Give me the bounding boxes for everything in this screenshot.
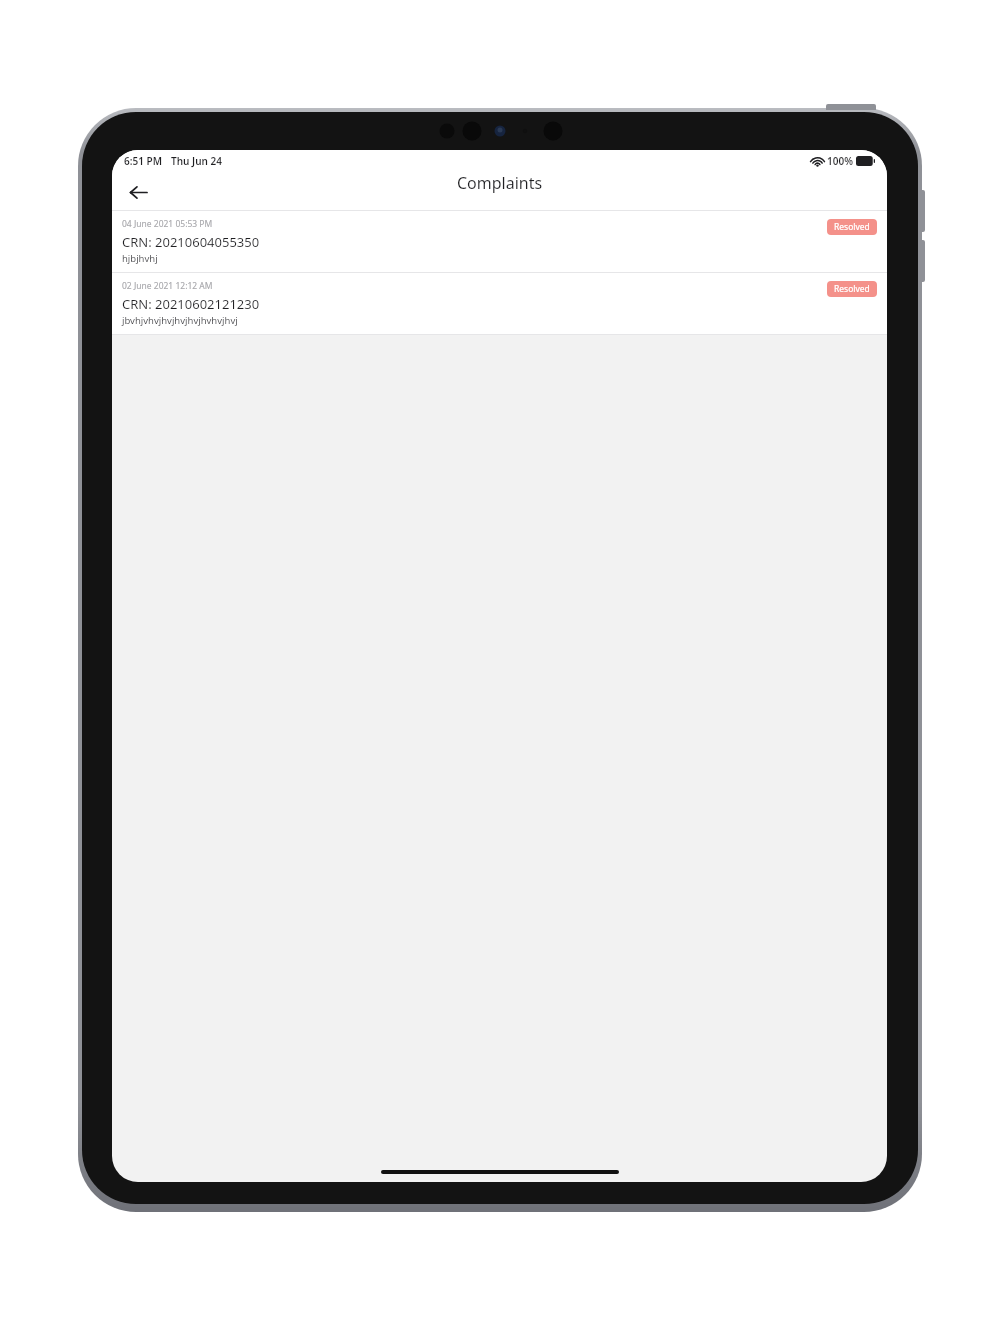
button[interactable]: Resolved bbox=[827, 281, 877, 297]
staticText: Complaints bbox=[457, 172, 543, 194]
staticText: CRN: 20210602121230 bbox=[122, 295, 260, 313]
button[interactable]: Back bbox=[120, 174, 156, 210]
staticText: Resolved bbox=[834, 283, 870, 295]
button[interactable]: Resolved bbox=[827, 219, 877, 235]
staticText: 02 June 2021 12:12 AM bbox=[122, 280, 213, 292]
button[interactable]: 04 June 2021 05:53 PM bbox=[112, 211, 887, 273]
staticText: 04 June 2021 05:53 PM bbox=[122, 218, 213, 230]
staticText: 6:51 PM bbox=[124, 154, 162, 168]
staticText: jbvhjvhvjhvjhvjhvjhvhvjhvj bbox=[122, 314, 238, 327]
staticText: CRN: 20210604055350 bbox=[122, 233, 260, 251]
staticText: hjbjhvhj bbox=[122, 252, 158, 265]
staticText: Resolved bbox=[834, 221, 870, 233]
button[interactable]: 02 June 2021 12:12 AM bbox=[112, 273, 887, 335]
staticText: Thu Jun 24 bbox=[171, 154, 222, 168]
staticText: 100% bbox=[827, 154, 853, 168]
